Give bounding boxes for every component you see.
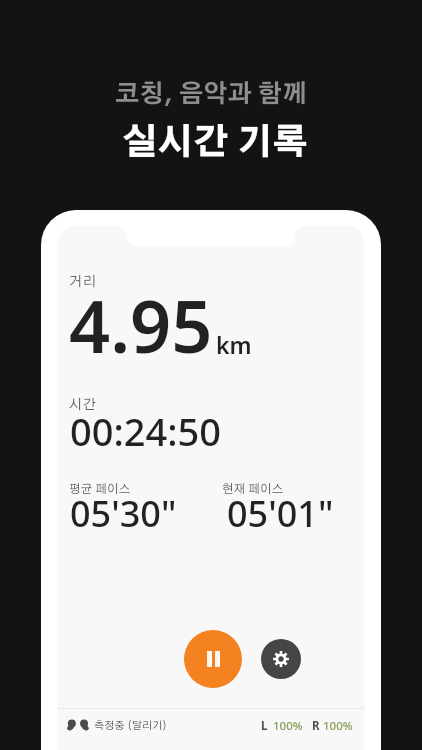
button[interactable]: Settings	[261, 639, 301, 679]
staticText: 시간	[69, 398, 96, 412]
staticText: 측정중 (달리기)	[94, 721, 168, 732]
staticText: 코칭, 음악과 함께	[0, 82, 422, 107]
staticText: 05'01"	[227, 489, 334, 538]
staticText: R	[312, 718, 320, 734]
staticText: 05'30"	[70, 489, 177, 538]
staticText: 00:24:50	[70, 405, 222, 457]
staticText: 현재 페이스	[222, 483, 284, 495]
button[interactable]: Pause	[184, 630, 242, 688]
staticText: 100%	[323, 718, 353, 734]
staticText: 100%	[273, 718, 303, 734]
staticText: 4.95	[69, 276, 213, 374]
staticText: 거리	[69, 275, 96, 289]
staticText: 실시간 기록	[4, 126, 422, 161]
staticText: 평균 페이스	[69, 483, 131, 495]
staticText: L	[261, 718, 268, 734]
staticText: km	[216, 329, 252, 360]
